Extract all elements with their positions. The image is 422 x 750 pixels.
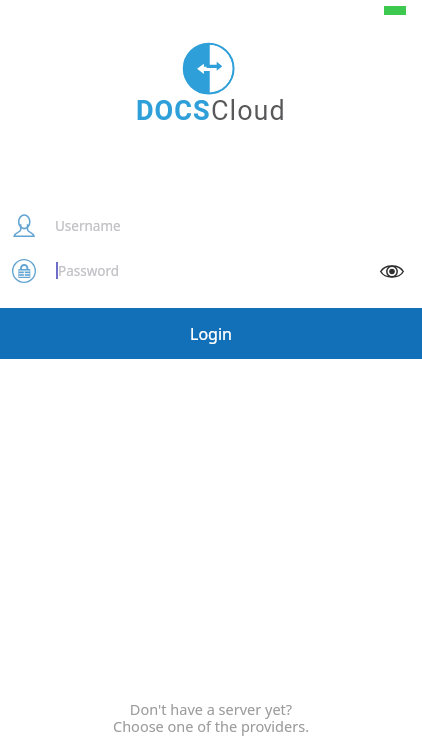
staticText: Cloud [211,95,286,127]
button[interactable]: Show password [370,249,414,293]
staticText: Don't have a server yet? Choose one of t… [0,699,422,736]
button[interactable]: Username [0,203,422,248]
button[interactable]: Login [0,308,422,359]
staticText: Password [58,262,120,280]
staticText: DOCS [136,95,211,127]
staticText: Login [190,323,232,345]
button[interactable]: Password [0,248,422,293]
staticText: Username [55,217,121,235]
